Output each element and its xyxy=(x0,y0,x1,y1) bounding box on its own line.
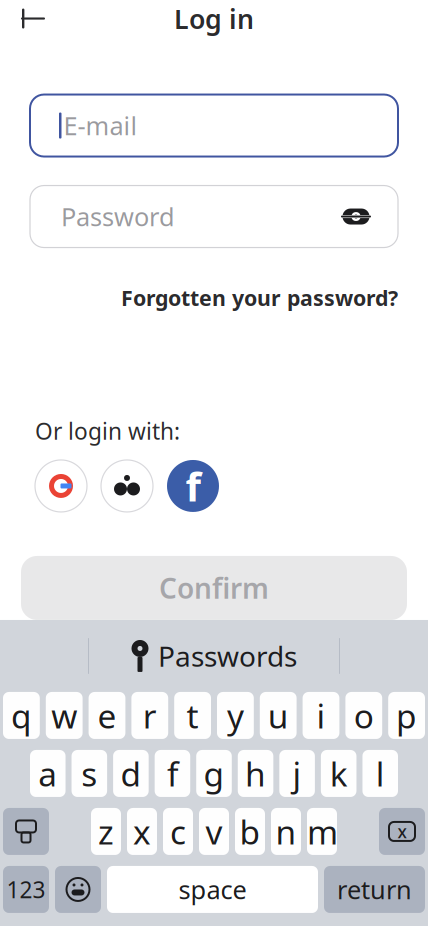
button[interactable]: s xyxy=(72,750,107,797)
button[interactable]: Confirm xyxy=(21,556,407,620)
staticText: E-mail xyxy=(63,109,137,142)
button[interactable]: n xyxy=(271,808,301,855)
button[interactable]: Password xyxy=(30,185,398,247)
staticText: r xyxy=(143,693,157,738)
button[interactable]: d xyxy=(113,750,149,797)
staticText: Log in xyxy=(174,1,254,36)
button[interactable]: e xyxy=(89,692,125,739)
staticText: x xyxy=(133,809,151,854)
button[interactable]: Sign in with Apple xyxy=(101,460,153,512)
staticText: Password xyxy=(61,200,175,233)
staticText: x xyxy=(397,820,406,843)
staticText: d xyxy=(120,751,141,796)
button[interactable]: space xyxy=(107,866,318,913)
button[interactable]: o xyxy=(345,692,382,739)
button[interactable]: Emoji xyxy=(55,866,101,913)
button[interactable]: l xyxy=(362,750,398,797)
button[interactable]: y xyxy=(217,692,254,739)
button[interactable]: E-mail xyxy=(30,94,398,156)
staticText: a xyxy=(38,751,57,796)
button[interactable]: Passwords xyxy=(117,631,311,681)
staticText: Passwords xyxy=(158,637,297,675)
staticText: h xyxy=(245,751,266,796)
button[interactable]: z xyxy=(91,808,121,855)
staticText: l xyxy=(376,751,385,796)
button[interactable]: g xyxy=(196,750,232,797)
button[interactable]: f xyxy=(155,750,190,797)
staticText: m xyxy=(307,809,337,854)
staticText: f xyxy=(185,459,200,512)
staticText: o xyxy=(354,693,374,738)
staticText: s xyxy=(81,751,97,796)
button[interactable]: Delete xyxy=(379,808,425,855)
staticText: p xyxy=(396,693,417,738)
staticText: n xyxy=(275,809,296,854)
staticText: c xyxy=(170,809,186,854)
staticText: y xyxy=(227,693,244,738)
staticText: 123 xyxy=(6,874,45,904)
staticText: v xyxy=(205,809,222,854)
staticText: e xyxy=(97,693,116,738)
button[interactable]: Sign in with Facebook xyxy=(167,460,219,512)
button[interactable]: b xyxy=(235,808,265,855)
staticText: q xyxy=(11,693,32,738)
staticText: u xyxy=(268,693,289,738)
staticText: return xyxy=(337,873,412,906)
staticText: i xyxy=(316,693,325,738)
button[interactable]: Forgotten your password? xyxy=(121,277,398,318)
staticText: Or login with: xyxy=(35,416,180,446)
staticText: Confirm xyxy=(159,569,269,607)
staticText: w xyxy=(51,693,77,738)
staticText: Forgotten your password? xyxy=(121,283,398,312)
button[interactable]: 123 xyxy=(3,866,49,913)
button[interactable]: u xyxy=(260,692,297,739)
staticText: z xyxy=(98,809,114,854)
button[interactable]: x xyxy=(127,808,157,855)
button[interactable]: v xyxy=(199,808,229,855)
staticText: space xyxy=(178,873,246,906)
button[interactable]: Shift xyxy=(3,808,49,855)
staticText: j xyxy=(293,751,302,796)
staticText: k xyxy=(330,751,348,796)
button[interactable]: r xyxy=(131,692,168,739)
button[interactable]: m xyxy=(307,808,337,855)
button[interactable]: h xyxy=(238,750,273,797)
button[interactable]: return xyxy=(324,866,425,913)
staticText: t xyxy=(187,693,199,738)
staticText: g xyxy=(203,751,224,796)
staticText: f xyxy=(167,751,178,796)
button[interactable]: q xyxy=(3,692,40,739)
button[interactable]: j xyxy=(279,750,315,797)
button[interactable]: Back xyxy=(10,0,56,41)
button[interactable]: i xyxy=(303,692,339,739)
button[interactable]: a xyxy=(30,750,66,797)
button[interactable]: p xyxy=(388,692,425,739)
button[interactable]: t xyxy=(174,692,211,739)
button[interactable]: k xyxy=(321,750,356,797)
staticText: b xyxy=(239,809,260,854)
button[interactable]: w xyxy=(46,692,83,739)
button[interactable]: Sign in with Google xyxy=(35,460,87,512)
button[interactable]: c xyxy=(163,808,193,855)
